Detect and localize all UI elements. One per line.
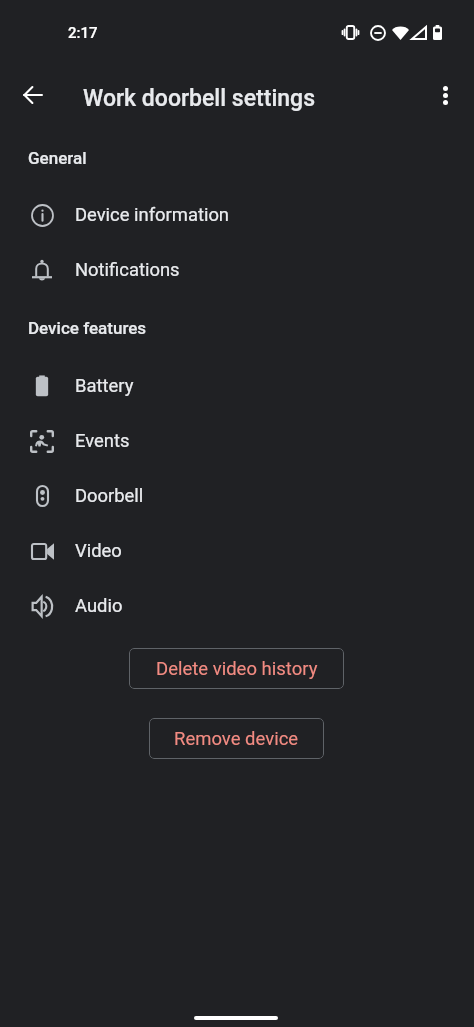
staticText: Device information [75, 204, 230, 226]
staticText: Notifications [75, 259, 180, 281]
staticText: Video [75, 540, 122, 562]
staticText: Delete video history [156, 658, 318, 680]
staticText: 2:17 [68, 24, 98, 42]
button[interactable]: Events [0, 414, 474, 468]
staticText: Doorbell [75, 485, 144, 507]
staticText: Remove device [174, 728, 299, 750]
button[interactable]: Audio [0, 579, 474, 633]
staticText: General [28, 148, 87, 168]
button[interactable]: Doorbell [0, 469, 474, 523]
button[interactable]: Back [15, 77, 51, 113]
button[interactable]: Delete video history [129, 648, 344, 689]
staticText: Events [75, 430, 130, 452]
staticText: Device features [28, 318, 147, 338]
button[interactable]: Device information [0, 188, 474, 242]
button[interactable]: Battery [0, 359, 474, 413]
staticText: Battery [75, 375, 134, 397]
button[interactable]: Notifications [0, 243, 474, 297]
button[interactable]: More options [427, 77, 463, 113]
button[interactable]: Video [0, 524, 474, 578]
staticText: Audio [75, 595, 123, 617]
button[interactable]: Remove device [149, 718, 324, 759]
staticText: Work doorbell settings [83, 85, 316, 112]
